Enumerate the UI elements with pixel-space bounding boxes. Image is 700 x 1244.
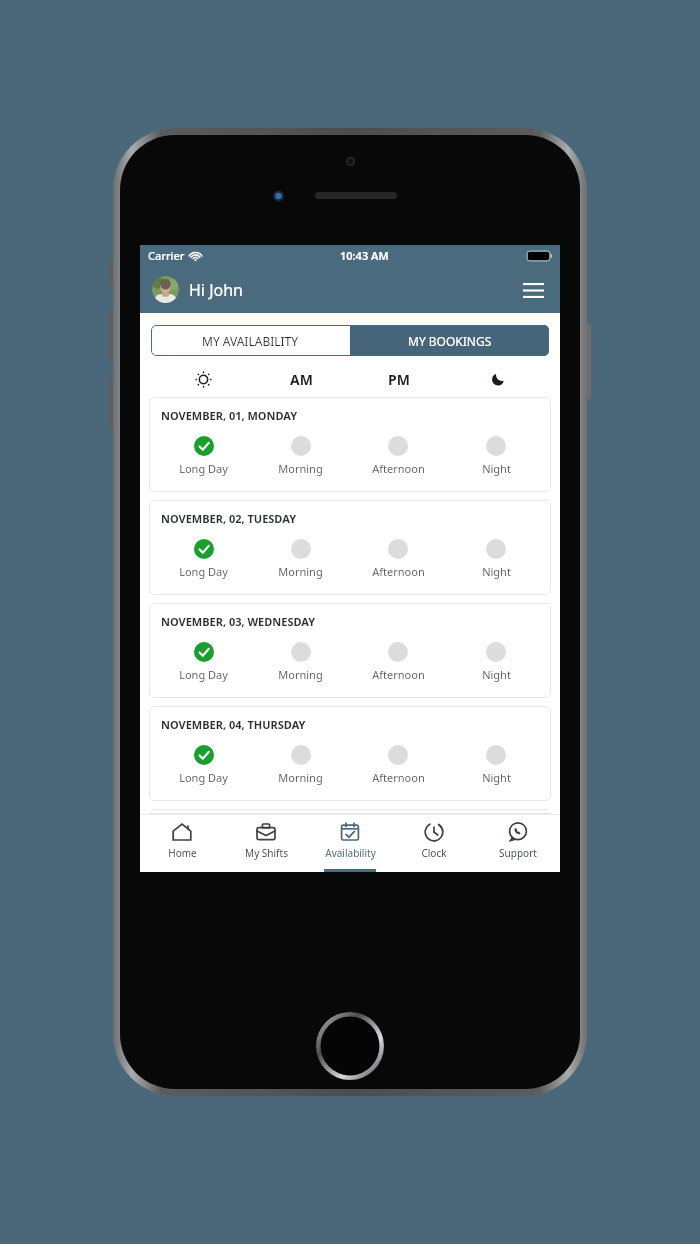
button[interactable]: NOVEMBER, 03, WEDNESDAY <box>149 603 551 698</box>
staticText: Carrier <box>148 248 185 263</box>
staticText: NOVEMBER, 04, THURSDAY <box>161 717 306 732</box>
button[interactable]: Availability <box>308 815 392 872</box>
staticText: Afternoon <box>372 770 425 785</box>
staticText: Home <box>168 846 197 860</box>
staticText: Long Day <box>179 667 228 682</box>
staticText: NOVEMBER, 02, TUESDAY <box>161 511 297 526</box>
button[interactable]: NOVEMBER, 05, FRIDAY <box>149 809 551 814</box>
button[interactable]: My Shifts <box>224 815 308 872</box>
button[interactable]: Afternoon <box>349 436 447 476</box>
staticText: Availability <box>325 846 376 860</box>
staticText: Morning <box>278 461 323 476</box>
button[interactable]: Afternoon <box>349 745 447 785</box>
staticText: Night <box>482 667 511 682</box>
button[interactable]: Morning <box>252 539 349 579</box>
button[interactable] <box>152 276 179 303</box>
other: Long day <box>195 371 212 388</box>
button[interactable]: Afternoon <box>349 642 447 682</box>
button[interactable]: Night <box>447 539 545 579</box>
staticText: Morning <box>278 667 323 682</box>
staticText: Night <box>482 461 511 476</box>
staticText: NOVEMBER, 03, WEDNESDAY <box>161 614 316 629</box>
button[interactable]: NOVEMBER, 04, THURSDAY <box>149 706 551 801</box>
staticText: Support <box>499 846 537 860</box>
staticText: Afternoon <box>372 461 425 476</box>
staticText: 10:43 AM <box>340 248 389 263</box>
button[interactable]: Long Day <box>155 436 252 476</box>
staticText: Morning <box>278 564 323 579</box>
staticText: Morning <box>278 770 323 785</box>
button[interactable]: NOVEMBER, 01, MONDAY <box>149 397 551 492</box>
button[interactable]: Support <box>476 815 560 872</box>
button[interactable]: Long Day <box>155 642 252 682</box>
button[interactable]: MY BOOKINGS <box>350 325 549 356</box>
button[interactable]: Afternoon <box>349 539 447 579</box>
staticText: NOVEMBER, 01, MONDAY <box>161 408 298 423</box>
staticText: Long Day <box>179 770 228 785</box>
staticText: PM <box>388 370 410 389</box>
staticText: Afternoon <box>372 564 425 579</box>
button[interactable]: Night <box>447 642 545 682</box>
button[interactable]: Long Day <box>155 745 252 785</box>
staticText: Hi John <box>189 279 243 301</box>
staticText: MY BOOKINGS <box>408 333 492 349</box>
staticText: Night <box>482 770 511 785</box>
staticText: AM <box>290 370 313 389</box>
button[interactable]: Clock <box>392 815 476 872</box>
staticText: Afternoon <box>372 667 425 682</box>
button[interactable]: Long Day <box>155 539 252 579</box>
button[interactable]: MY AVAILABILITY <box>151 325 350 356</box>
staticText: MY AVAILABILITY <box>202 333 299 349</box>
staticText: Long Day <box>179 564 228 579</box>
button[interactable]: NOVEMBER, 02, TUESDAY <box>149 500 551 595</box>
staticText: Night <box>482 564 511 579</box>
button[interactable]: Morning <box>252 436 349 476</box>
other: Night <box>490 372 505 387</box>
staticText: Clock <box>421 846 447 860</box>
button[interactable]: Night <box>447 436 545 476</box>
button[interactable]: Home <box>140 815 224 872</box>
button[interactable]: Night <box>447 745 545 785</box>
button[interactable]: Morning <box>252 642 349 682</box>
button[interactable]: Menu <box>518 275 548 305</box>
button[interactable]: Morning <box>252 745 349 785</box>
staticText: Long Day <box>179 461 228 476</box>
staticText: My Shifts <box>245 846 288 860</box>
